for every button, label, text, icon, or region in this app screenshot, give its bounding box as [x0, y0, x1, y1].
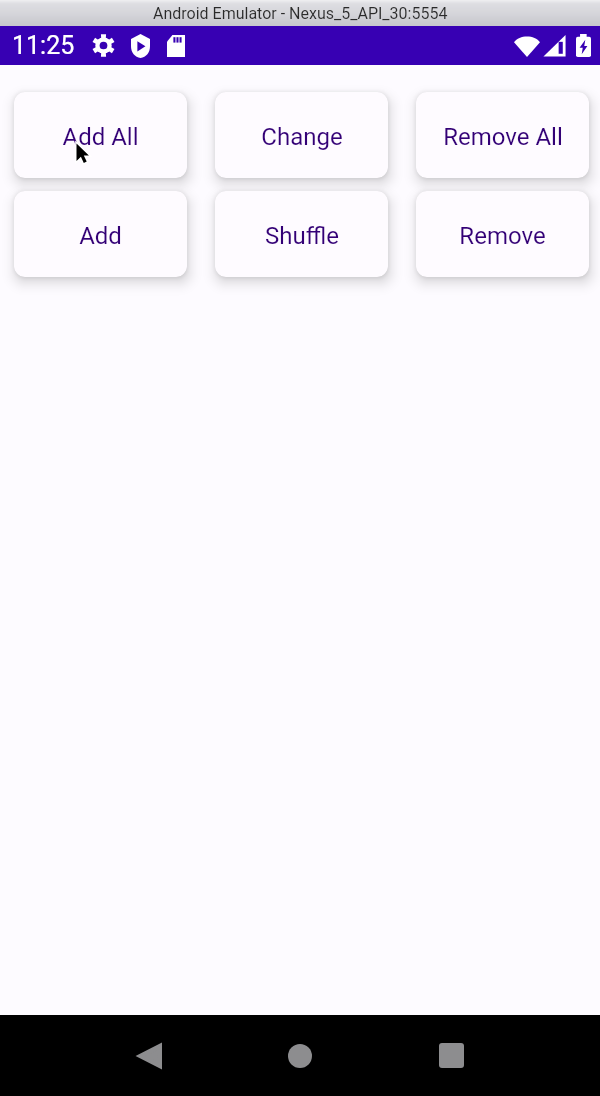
staticText: Remove All	[443, 123, 563, 151]
button[interactable]: Remove All	[416, 92, 589, 178]
button[interactable]: Add	[14, 191, 187, 277]
button[interactable]: Home	[262, 1015, 338, 1096]
button[interactable]: Remove	[416, 191, 589, 277]
staticText: 11:25	[12, 31, 75, 60]
button[interactable]: Change	[215, 92, 388, 178]
staticText: Android Emulator - Nexus_5_API_30:5554	[153, 4, 448, 23]
button[interactable]: Shuffle	[215, 191, 388, 277]
staticText: Shuffle	[265, 222, 339, 250]
staticText: Add	[79, 222, 122, 250]
staticText: Change	[261, 123, 343, 151]
button[interactable]: Back	[111, 1015, 187, 1096]
staticText: Remove	[459, 222, 546, 250]
staticText: Add All	[62, 123, 139, 151]
button[interactable]: Recent apps	[413, 1015, 489, 1096]
button[interactable]: Add All	[14, 92, 187, 178]
